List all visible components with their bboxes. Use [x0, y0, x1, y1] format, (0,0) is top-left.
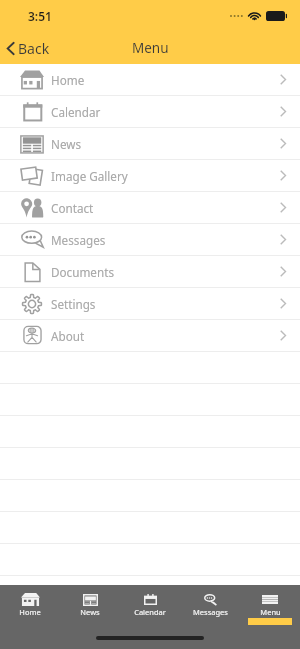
staticText: Settings [51, 296, 96, 312]
staticText: About [51, 328, 85, 344]
button[interactable]: About [0, 320, 300, 352]
staticText: Calendar [134, 607, 166, 617]
button[interactable]: Settings [0, 288, 300, 320]
staticText: News [51, 136, 82, 152]
button[interactable]: Home [0, 585, 60, 649]
button[interactable]: Image Gallery [0, 160, 300, 192]
staticText: Documents [51, 264, 114, 280]
button[interactable]: News [60, 585, 120, 649]
button[interactable]: Documents [0, 256, 300, 288]
button[interactable]: Home [0, 64, 300, 96]
button[interactable]: Back [0, 35, 60, 62]
staticText: 3:51 [28, 8, 52, 24]
staticText: Contact [51, 200, 94, 216]
staticText: News [80, 607, 100, 617]
button[interactable]: Messages [180, 585, 240, 649]
staticText: Home [19, 607, 41, 617]
staticText: Back [18, 39, 50, 58]
staticText: Image Gallery [51, 168, 128, 184]
button[interactable]: Calendar [120, 585, 180, 649]
staticText: Messages [51, 232, 106, 248]
staticText: Home [51, 72, 85, 88]
staticText: Calendar [51, 104, 101, 120]
button[interactable]: News [0, 128, 300, 160]
staticText: Messages [193, 607, 228, 617]
button[interactable]: Contact [0, 192, 300, 224]
button[interactable]: Calendar [0, 96, 300, 128]
staticText: Menu [260, 607, 281, 617]
button[interactable]: Messages [0, 224, 300, 256]
staticText: Menu [132, 39, 169, 57]
button[interactable]: Menu [240, 585, 300, 649]
